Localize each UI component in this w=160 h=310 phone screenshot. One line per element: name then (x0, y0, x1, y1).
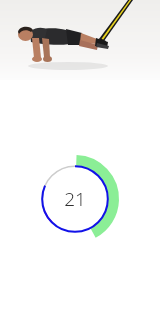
other: Exercise demonstration photo (0, 0, 160, 80)
button[interactable]: Rep counter 21 (27, 151, 123, 247)
staticText: 21 (64, 186, 86, 212)
